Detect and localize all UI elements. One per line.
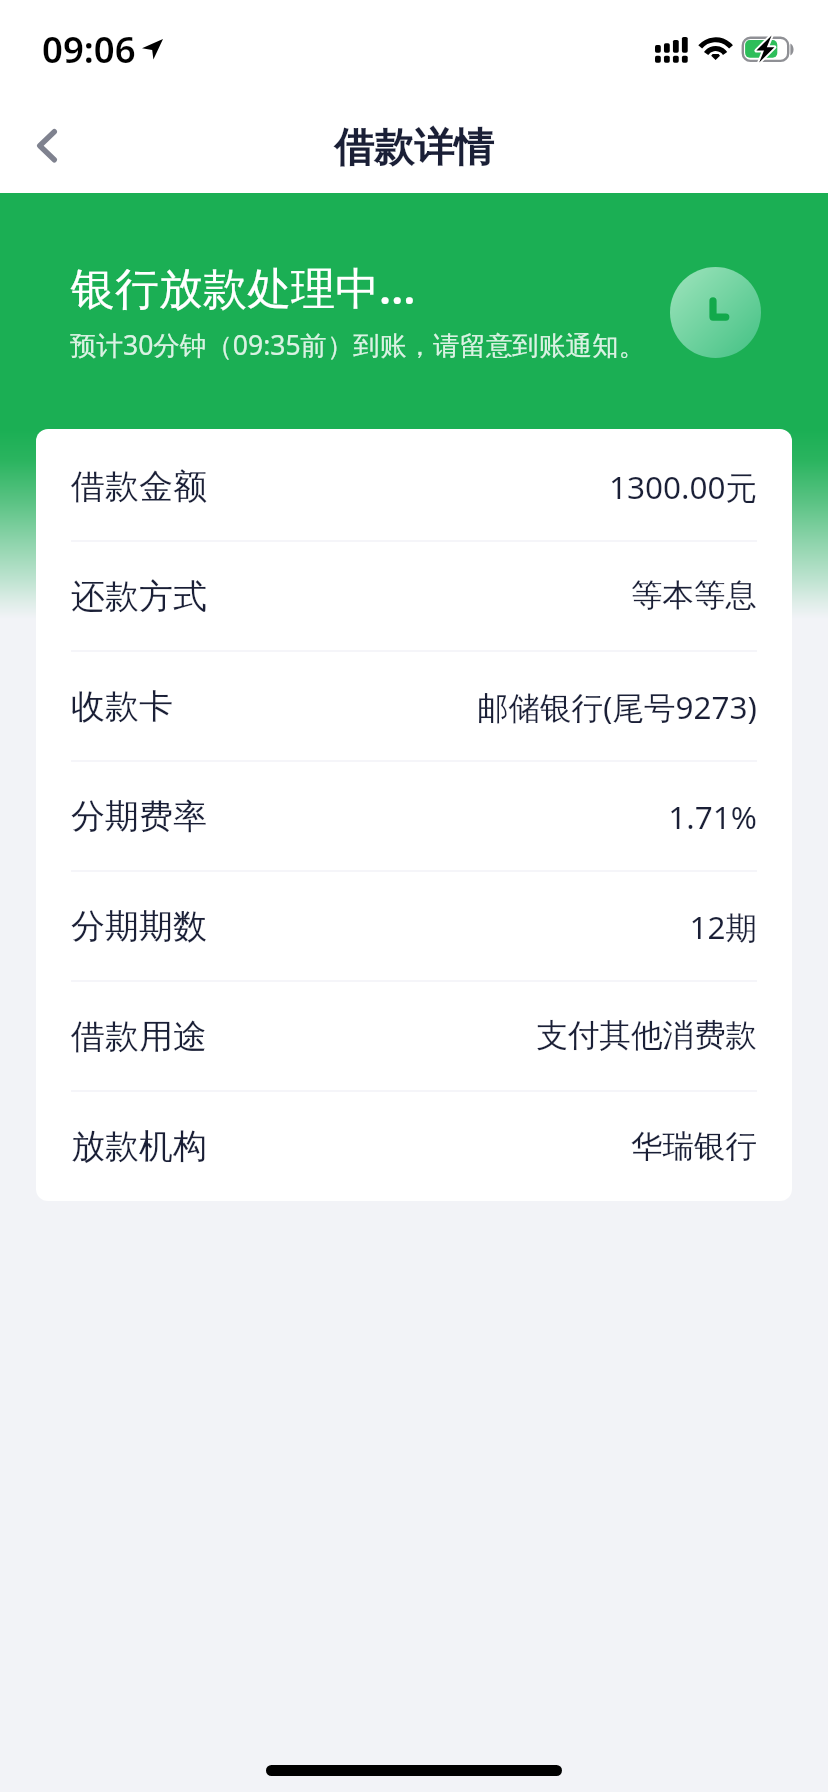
staticText: 放款机构 bbox=[71, 1125, 207, 1168]
staticText: 华瑞银行 bbox=[631, 1127, 757, 1167]
staticText: 等本等息 bbox=[631, 576, 757, 616]
staticText: 分期费率 bbox=[71, 795, 207, 838]
button[interactable]: 放款机构 bbox=[36, 1092, 792, 1201]
staticText: 分期期数 bbox=[71, 905, 207, 948]
staticText: 邮储银行(尾号9273) bbox=[477, 685, 757, 728]
staticText: 收款卡 bbox=[71, 685, 173, 728]
staticText: 预计30分钟（09:35前）到账，请留意到账通知。 bbox=[70, 327, 646, 363]
staticText: 12期 bbox=[689, 905, 757, 948]
staticText: 1.71% bbox=[668, 795, 757, 838]
staticText: 1300.00元 bbox=[608, 465, 757, 508]
button[interactable]: 借款用途 bbox=[36, 982, 792, 1090]
staticText: 借款详情 bbox=[334, 122, 494, 172]
button[interactable]: 还款方式 bbox=[36, 542, 792, 650]
button[interactable]: 收款卡 bbox=[36, 652, 792, 760]
staticText: 09:06 bbox=[42, 24, 136, 74]
staticText: 借款金额 bbox=[71, 465, 207, 508]
button[interactable]: 借款金额 bbox=[36, 429, 792, 540]
button[interactable]: 分期期数 bbox=[36, 872, 792, 980]
staticText: 还款方式 bbox=[71, 575, 207, 618]
staticText: 借款用途 bbox=[71, 1015, 207, 1058]
button[interactable]: 分期费率 bbox=[36, 762, 792, 870]
staticText: 支付其他消费款 bbox=[536, 1016, 757, 1056]
staticText: 银行放款处理中… bbox=[71, 257, 416, 317]
button[interactable]: Back bbox=[3, 98, 91, 186]
